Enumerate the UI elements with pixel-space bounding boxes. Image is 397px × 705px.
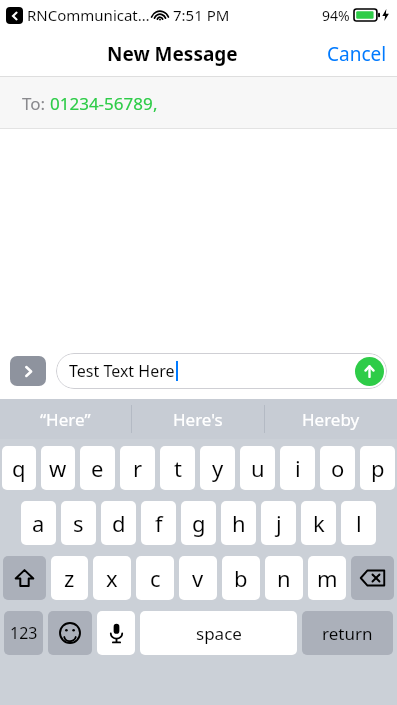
staticText: Cancel [327, 41, 387, 67]
staticText: g [192, 508, 206, 538]
staticText: p [371, 453, 385, 483]
button[interactable]: Shift [3, 556, 46, 600]
button[interactable]: Test Text Here [56, 353, 387, 389]
button[interactable]: c [136, 556, 174, 600]
button[interactable]: o [320, 446, 355, 490]
button[interactable]: f [141, 501, 176, 545]
staticText: f [155, 508, 163, 538]
button[interactable]: return [302, 611, 393, 655]
button[interactable]: e [80, 446, 115, 490]
button[interactable]: s [61, 501, 96, 545]
staticText: Here's [173, 408, 223, 431]
staticText: return [322, 622, 373, 645]
staticText: space [196, 622, 242, 645]
button[interactable]: y [200, 446, 235, 490]
button[interactable]: k [301, 501, 336, 545]
button[interactable]: space [140, 611, 297, 655]
button[interactable]: Here's [132, 399, 264, 439]
staticText: a [32, 508, 45, 538]
staticText: q [12, 453, 26, 483]
button[interactable]: z [51, 556, 88, 600]
staticText: 94% [322, 6, 350, 25]
button[interactable]: h [221, 501, 256, 545]
staticText: v [192, 563, 204, 593]
button[interactable]: Cancel [327, 41, 387, 67]
button[interactable]: r [120, 446, 155, 490]
staticText: 01234-56789 [50, 92, 153, 115]
staticText: New Message [107, 41, 238, 67]
staticText: w [49, 453, 67, 483]
staticText: h [232, 508, 246, 538]
staticText: RNCommunicat… [27, 5, 150, 25]
staticText: To: [22, 92, 50, 115]
button[interactable]: Backspace [351, 556, 394, 600]
button[interactable]: Send [355, 357, 384, 386]
staticText: c [150, 563, 161, 593]
staticText: n [277, 563, 291, 593]
button[interactable]: u [240, 446, 275, 490]
button[interactable]: n [265, 556, 303, 600]
staticText: d [112, 508, 126, 538]
staticText: b [234, 563, 248, 593]
button[interactable]: w [41, 446, 75, 490]
button[interactable]: 123 [4, 611, 43, 655]
button[interactable]: More options [10, 356, 46, 386]
staticText: j [276, 508, 282, 538]
button[interactable]: x [93, 556, 131, 600]
button[interactable]: l [341, 501, 376, 545]
staticText: r [133, 453, 143, 483]
staticText: “Here” [40, 408, 91, 431]
staticText: e [91, 453, 104, 483]
button[interactable]: Back [6, 7, 23, 24]
button[interactable]: m [308, 556, 346, 600]
button[interactable]: b [222, 556, 260, 600]
staticText: k [313, 508, 325, 538]
button[interactable]: j [261, 501, 296, 545]
button[interactable]: “Here” [0, 399, 131, 439]
button[interactable]: Dictation [97, 611, 135, 655]
staticText: m [317, 563, 338, 593]
button[interactable]: q [2, 446, 36, 490]
staticText: i [295, 453, 301, 483]
staticText: y [212, 453, 224, 483]
button[interactable]: p [360, 446, 395, 490]
staticText: x [106, 563, 118, 593]
staticText: l [356, 508, 362, 538]
staticText: , [153, 92, 158, 115]
button[interactable]: g [181, 501, 216, 545]
staticText: t [174, 453, 182, 483]
staticText: Test Text Here [69, 360, 175, 382]
button[interactable]: Emoji [48, 611, 92, 655]
button[interactable]: v [179, 556, 217, 600]
staticText: Hereby [302, 408, 360, 431]
button[interactable]: i [280, 446, 315, 490]
button[interactable]: To: [0, 77, 397, 129]
staticText: o [331, 453, 345, 483]
staticText: 7:51 PM [173, 5, 230, 25]
staticText: s [73, 508, 84, 538]
button[interactable]: t [160, 446, 195, 490]
button[interactable]: a [21, 501, 56, 545]
staticText: z [64, 563, 75, 593]
staticText: u [251, 453, 265, 483]
button[interactable]: Hereby [265, 399, 397, 439]
button[interactable]: d [101, 501, 136, 545]
staticText: 123 [10, 622, 38, 644]
